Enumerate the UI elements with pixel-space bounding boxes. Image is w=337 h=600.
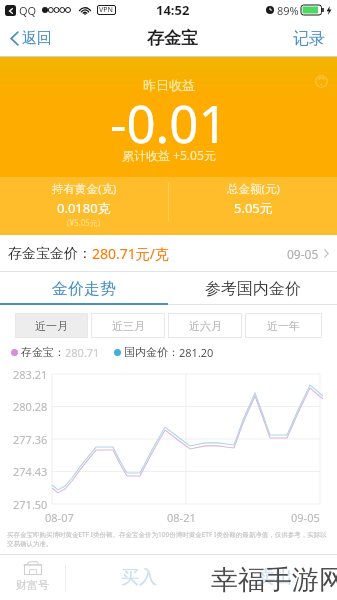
staticText: 记录 — [293, 29, 325, 49]
staticText: -0.01 — [110, 88, 228, 157]
button[interactable]: 财富号 — [0, 554, 65, 600]
staticText: 卖出 — [257, 566, 293, 589]
staticText: 近三月 — [112, 319, 145, 333]
staticText: 近六月 — [189, 319, 222, 333]
staticText: 存金宝： — [21, 345, 65, 359]
staticText: 277.36 — [13, 432, 48, 447]
button[interactable]: 返回 — [8, 21, 54, 56]
staticText: 昨日收益 — [143, 77, 195, 93]
staticText: 国内金价： — [124, 345, 179, 359]
staticText: 281.20 — [179, 345, 214, 360]
staticText: 参考国内金价 — [205, 279, 301, 299]
staticText: 274.43 — [13, 464, 48, 479]
staticText: 买入 — [121, 566, 157, 589]
staticText: 5.05元 — [234, 199, 273, 217]
staticText: 存金宝金价： — [8, 245, 92, 263]
button[interactable]: 近六月 — [168, 313, 242, 338]
button[interactable]: 帮助 — [315, 75, 328, 88]
staticText: 09-05 — [287, 246, 319, 262]
staticText: 幸福手游网 — [211, 563, 337, 597]
staticText: 09-05 — [291, 510, 320, 525]
staticText: 总金额(元) — [227, 181, 280, 197]
staticText: 280.28 — [13, 399, 48, 414]
staticText: 283.21 — [13, 367, 48, 382]
button[interactable]: 存金宝金价： — [0, 235, 337, 272]
staticText: 89% — [277, 3, 299, 18]
button[interactable]: 买入 — [66, 554, 212, 600]
staticText: 金价走势 — [52, 279, 116, 299]
staticText: 0.0180克 — [57, 199, 111, 217]
button[interactable]: 记录 — [291, 21, 327, 57]
button[interactable]: 近一年 — [245, 313, 322, 338]
staticText: 280.71元/克 — [92, 244, 169, 263]
staticText: 累计收益 +5.05元 — [122, 147, 216, 163]
staticText: 持有黄金(克) — [52, 181, 117, 197]
button[interactable]: 参考国内金价 — [168, 272, 337, 305]
button[interactable]: 卖出 — [212, 554, 337, 600]
staticText: 近一月 — [35, 319, 68, 333]
staticText: 近一年 — [267, 319, 300, 333]
button[interactable]: 近一月 — [15, 313, 88, 338]
staticText: 08-21 — [167, 510, 196, 525]
staticText: (¥5.05元) — [67, 217, 101, 228]
staticText: 返回 — [22, 29, 52, 48]
staticText: 存金宝 — [147, 28, 198, 49]
button[interactable]: 金价走势 — [0, 272, 168, 305]
staticText: 买存金宝即购买博时黄金ETF I类份额。存金宝金价为100份博时黄金ETF I类… — [7, 530, 330, 548]
staticText: 08-07 — [45, 510, 74, 525]
staticText: QQ — [19, 3, 37, 18]
staticText: 280.71 — [65, 345, 100, 360]
staticText: VPN — [99, 5, 114, 15]
staticText: 财富号 — [16, 578, 49, 592]
button[interactable]: 近三月 — [91, 313, 165, 338]
staticText: 14:52 — [156, 1, 190, 19]
staticText: 271.50 — [13, 497, 48, 512]
